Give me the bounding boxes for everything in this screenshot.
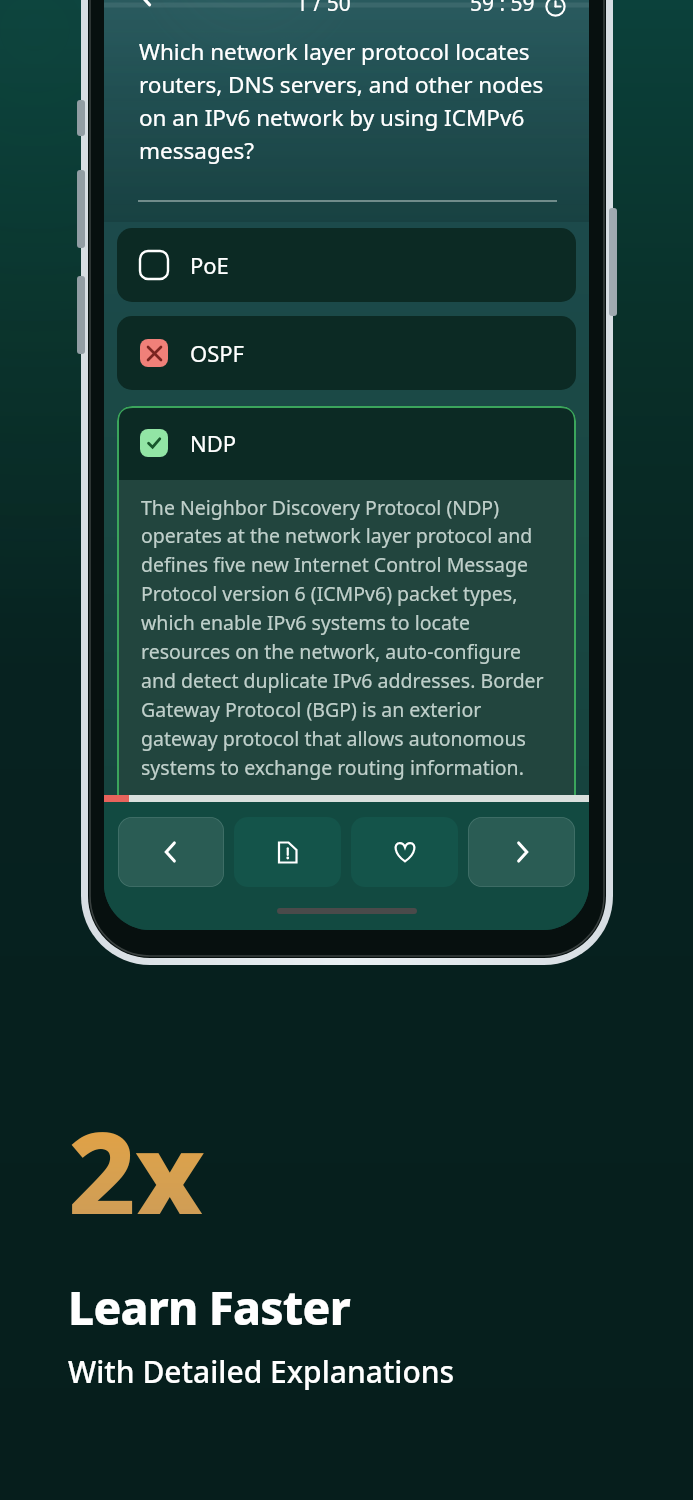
staticText: PoE: [190, 250, 229, 280]
staticText: The Neighbor Discovery Protocol (NDP) op…: [141, 494, 554, 787]
button[interactable]: Previous question: [118, 817, 224, 887]
staticText: NDP: [190, 428, 237, 458]
staticText: 2x: [68, 1092, 204, 1214]
staticText: Which network layer protocol locates rou…: [139, 36, 557, 165]
button[interactable]: Next question: [468, 817, 575, 887]
button[interactable]: NDP: [117, 406, 576, 480]
staticText: 59 : 59: [470, 0, 535, 18]
button[interactable]: OSPF: [117, 316, 576, 390]
staticText: With Detailed Explanations: [68, 1351, 455, 1392]
staticText: Learn Faster: [68, 1276, 350, 1339]
button[interactable]: Back: [124, 0, 168, 18]
button[interactable]: PoE: [117, 228, 576, 302]
button[interactable]: Report question: [234, 817, 341, 887]
staticText: OSPF: [190, 338, 244, 368]
button[interactable]: Favourite: [351, 817, 458, 887]
staticText: 1 / 50: [296, 0, 351, 18]
